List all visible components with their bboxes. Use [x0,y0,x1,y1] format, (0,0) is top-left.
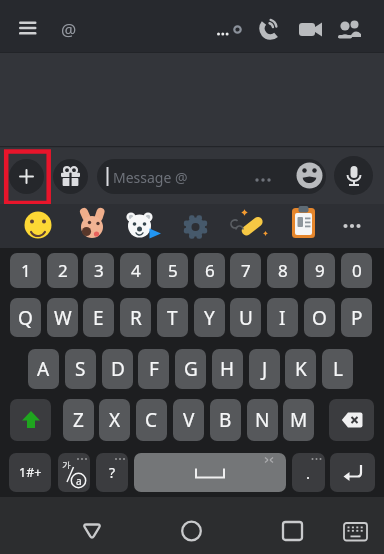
staticText: M [290,407,308,433]
staticText: R [130,305,142,331]
button[interactable]: 9 [304,253,335,288]
button[interactable] [53,159,88,194]
button[interactable] [257,16,283,42]
button[interactable]: 1 [10,253,41,288]
button[interactable]: G [175,349,206,389]
staticText: T [167,305,178,331]
button[interactable]: J [249,349,280,389]
button[interactable]: B [210,399,241,441]
button[interactable] [126,211,154,239]
staticText: F [149,356,159,382]
button[interactable]: X [99,399,130,441]
button[interactable] [10,399,51,441]
button[interactable]: 2 [47,253,78,288]
button[interactable]: 7 [230,253,261,288]
staticText: 6 [205,259,215,282]
button[interactable]: N [247,399,278,441]
staticText: W [54,305,72,331]
button[interactable] [330,453,375,492]
staticText: N [255,407,270,433]
staticText: Z [73,407,84,433]
button[interactable] [290,211,318,239]
staticText: V [183,407,195,433]
staticText: U [239,305,253,331]
button[interactable]: D [102,349,133,389]
button[interactable]: V [173,399,204,441]
staticText: ? [109,463,116,482]
button[interactable]: I [267,298,298,337]
button[interactable]: O [304,298,335,337]
button[interactable]: 8 [267,253,298,288]
button[interactable]: 0 [341,253,372,288]
staticText: 8 [278,259,288,282]
button[interactable]: C [136,399,167,441]
button[interactable] [182,211,210,239]
staticText: 1 [21,259,31,282]
staticText: L [333,356,343,382]
staticText: a [76,474,82,488]
button[interactable] [334,156,373,195]
button[interactable]: H [212,349,243,389]
staticText: S [75,356,86,382]
button[interactable] [9,159,44,194]
button[interactable] [168,510,216,550]
staticText: H [220,356,235,382]
button[interactable]: S [65,349,96,389]
staticText: 3 [94,259,104,282]
button[interactable] [24,211,52,239]
staticText: O [312,305,327,331]
button[interactable]: L [322,349,353,389]
button[interactable] [134,453,286,492]
button[interactable] [329,399,374,441]
button[interactable]: Z [63,399,94,441]
button[interactable]: U [230,298,261,337]
button[interactable]: W [47,298,78,337]
button[interactable]: 3 [83,253,114,288]
button[interactable] [337,512,377,548]
button[interactable] [68,510,116,550]
staticText: Message @ [113,168,188,187]
button[interactable]: 5 [157,253,188,288]
button[interactable] [78,211,106,239]
button[interactable] [338,211,366,239]
staticText: 7 [241,259,251,282]
staticText: X [109,407,121,433]
button[interactable]: 6 [194,253,225,288]
staticText: K [295,356,307,382]
button[interactable]: Y [194,298,225,337]
button[interactable]: R [120,298,151,337]
button[interactable]: F [138,349,169,389]
staticText: P [351,305,363,331]
staticText: E [93,305,104,331]
button[interactable]: A [28,349,59,389]
staticText: C [145,407,158,433]
button[interactable]: T [157,298,188,337]
button[interactable]: M [283,399,314,441]
staticText: 2 [58,259,68,282]
staticText: A [37,356,50,382]
staticText: D [111,356,125,382]
button[interactable]: Message @ [97,159,326,194]
button[interactable] [336,17,364,43]
button[interactable]: P [341,298,372,337]
staticText: Q [18,305,33,331]
button[interactable]: 4 [120,253,151,288]
button[interactable] [297,17,325,43]
button[interactable]: K [285,349,316,389]
button[interactable] [12,14,44,40]
staticText: 9 [315,259,325,282]
button[interactable] [236,211,264,239]
button[interactable]: . [292,453,325,492]
button[interactable]: 1#+ [9,453,51,492]
button[interactable]: 가 [58,453,90,492]
staticText: 0 [352,259,362,282]
staticText: J [262,356,268,382]
button[interactable]: Q [10,298,41,337]
staticText: I [279,305,286,331]
button[interactable] [268,510,316,550]
button[interactable]: ? [96,453,128,492]
staticText: 4 [131,259,141,282]
staticText: B [219,407,232,433]
staticText: 가 [62,460,71,471]
button[interactable]: E [83,298,114,337]
